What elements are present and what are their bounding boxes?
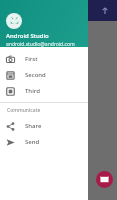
staticText: Third	[25, 87, 40, 95]
button[interactable]: Compose email	[96, 171, 113, 188]
staticText: Communicate	[7, 107, 41, 114]
staticText: Send	[25, 138, 40, 146]
button[interactable]: More options	[99, 5, 111, 17]
button[interactable]: Send	[0, 134, 88, 150]
staticText: Share	[25, 122, 42, 130]
button[interactable]: Second	[0, 67, 88, 83]
staticText: Android Studio	[6, 32, 49, 40]
button[interactable]: Share	[0, 118, 88, 134]
staticText: Second	[25, 71, 46, 79]
button[interactable]: First	[0, 51, 88, 67]
staticText: android.studio@android.com	[6, 41, 75, 47]
button[interactable]: Third	[0, 83, 88, 99]
staticText: First	[25, 55, 38, 63]
